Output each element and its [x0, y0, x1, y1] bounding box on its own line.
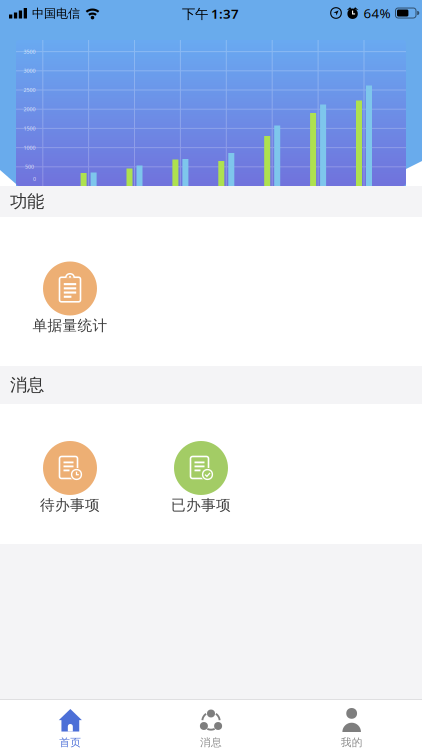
staticText: 500	[25, 163, 34, 170]
staticText: 消息	[10, 374, 44, 396]
staticText: 已办事项	[171, 496, 231, 514]
staticText: 1000	[23, 144, 35, 151]
button[interactable]: 首页	[0, 708, 141, 749]
button[interactable]: 待办事项	[10, 441, 130, 514]
staticText: 首页	[59, 736, 81, 749]
staticText: 2000	[23, 106, 35, 113]
button[interactable]: 消息	[141, 708, 281, 749]
staticText: 3500	[23, 48, 35, 55]
staticText: 0	[33, 175, 36, 183]
button[interactable]: 我的	[281, 708, 422, 749]
button[interactable]: 已办事项	[141, 441, 261, 514]
staticText: 下午 1:37	[182, 5, 239, 22]
staticText: 3000	[23, 67, 35, 74]
staticText: 1500	[23, 125, 35, 132]
staticText: 我的	[341, 736, 363, 749]
staticText: 功能	[10, 191, 44, 212]
staticText: 待办事项	[40, 496, 100, 514]
staticText: 64%	[363, 4, 390, 22]
staticText: 中国电信	[32, 6, 80, 21]
staticText: 2500	[23, 86, 35, 94]
staticText: 单据量统计	[32, 316, 107, 334]
staticText: 消息	[200, 736, 222, 749]
button[interactable]: 单据量统计	[10, 261, 130, 334]
